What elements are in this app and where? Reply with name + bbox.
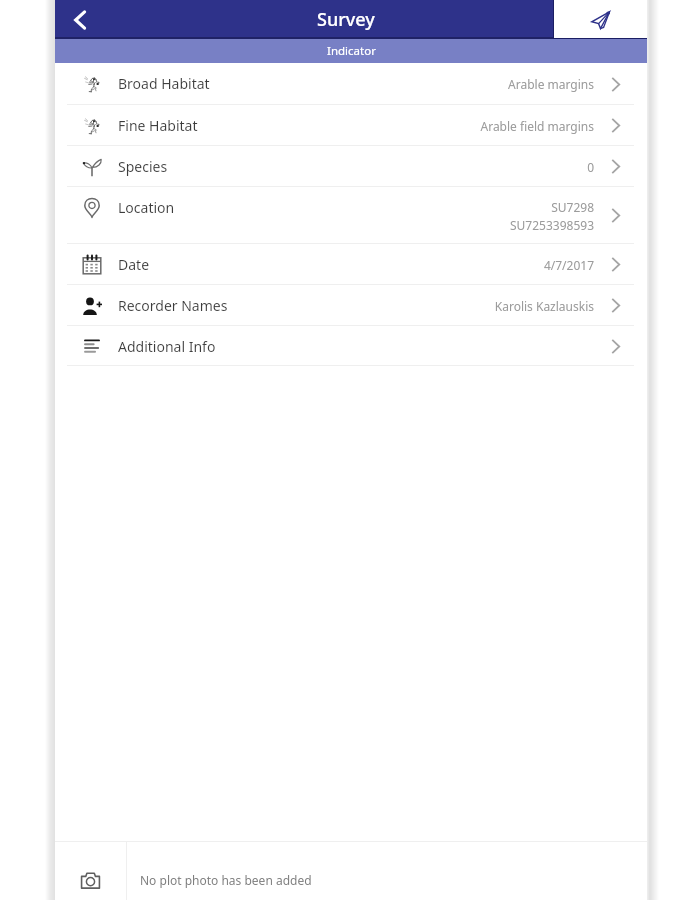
staticText: Indicator — [327, 43, 376, 59]
button[interactable]: Date — [55, 244, 647, 285]
button[interactable]: Send — [554, 0, 647, 39]
button[interactable]: Fine Habitat — [55, 105, 647, 146]
staticText: Arable field margins — [480, 118, 594, 134]
staticText: Broad Habitat — [118, 74, 210, 93]
staticText: 0 — [587, 159, 594, 175]
staticText: 4/7/2017 — [543, 257, 594, 273]
button[interactable]: Broad Habitat — [55, 63, 647, 105]
staticText: Location — [118, 198, 175, 217]
staticText: Additional Info — [118, 337, 216, 356]
staticText: Recorder Names — [118, 296, 228, 315]
staticText: Species — [118, 157, 168, 176]
staticText: Arable margins — [508, 76, 594, 92]
staticText: Date — [118, 255, 150, 274]
staticText: SU7298 — [551, 199, 594, 215]
button[interactable]: Back — [55, 0, 101, 39]
button[interactable]: Location — [55, 187, 647, 244]
staticText: Fine Habitat — [118, 116, 198, 135]
button[interactable]: Species — [55, 146, 647, 187]
button[interactable]: No plot photo has been added — [55, 842, 647, 900]
button[interactable]: Additional Info — [55, 326, 647, 366]
staticText: No plot photo has been added — [140, 872, 312, 888]
staticText: Karolis Kazlauskis — [494, 298, 594, 314]
button[interactable]: Recorder Names — [55, 285, 647, 326]
staticText: Survey — [317, 7, 375, 32]
staticText: SU7253398593 — [509, 217, 594, 233]
